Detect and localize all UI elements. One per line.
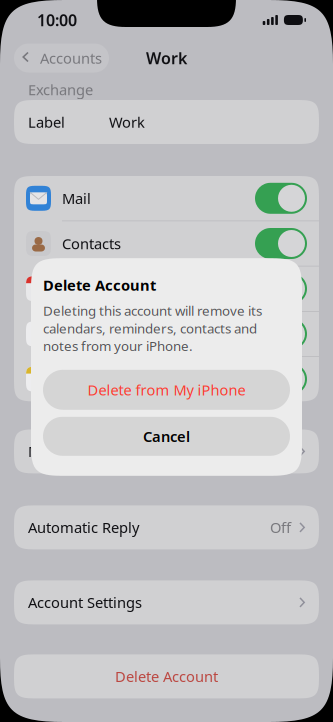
staticText: Contacts: [62, 234, 121, 253]
staticText: Deleting this account will remove its ca…: [43, 302, 262, 355]
staticText: Work: [146, 47, 187, 69]
staticText: Accounts: [40, 48, 102, 68]
staticText: Mail Days to Sync: [28, 442, 147, 461]
staticText: Account Settings: [28, 593, 142, 612]
button[interactable]: Mail Days to Sync: [0, 429, 333, 473]
button[interactable]: Calendars: [14, 266, 319, 312]
staticText: Notes: [62, 369, 102, 389]
staticText: Cancel: [143, 427, 190, 446]
button[interactable]: Automatic Reply: [0, 505, 333, 549]
button[interactable]: Delete from My iPhone: [43, 370, 290, 410]
button[interactable]: Delete Account: [0, 654, 333, 698]
button[interactable]: Contacts: [14, 221, 319, 266]
button[interactable]: Notes: [14, 357, 319, 401]
staticText: Mail: [62, 189, 91, 208]
button[interactable]: Mail: [14, 176, 319, 221]
staticText: Label: [28, 112, 65, 132]
button[interactable]: Cancel: [43, 417, 290, 456]
staticText: Delete Account: [43, 275, 156, 295]
staticText: Delete Account: [115, 667, 218, 686]
staticText: Calendars: [62, 279, 130, 298]
button[interactable]: Accounts: [14, 43, 109, 72]
staticText: Work: [109, 112, 145, 132]
staticText: Automatic Reply: [28, 518, 139, 537]
staticText: 10:00: [37, 9, 77, 31]
staticText: Reminders: [62, 324, 136, 344]
staticText: Off: [270, 518, 291, 537]
staticText: Delete from My iPhone: [87, 380, 245, 400]
staticText: Exchange: [28, 80, 93, 99]
staticText: No Limit: [232, 442, 291, 461]
button[interactable]: Reminders: [14, 312, 319, 357]
button[interactable]: Account Settings: [0, 580, 333, 624]
button[interactable]: Label: [0, 100, 333, 144]
